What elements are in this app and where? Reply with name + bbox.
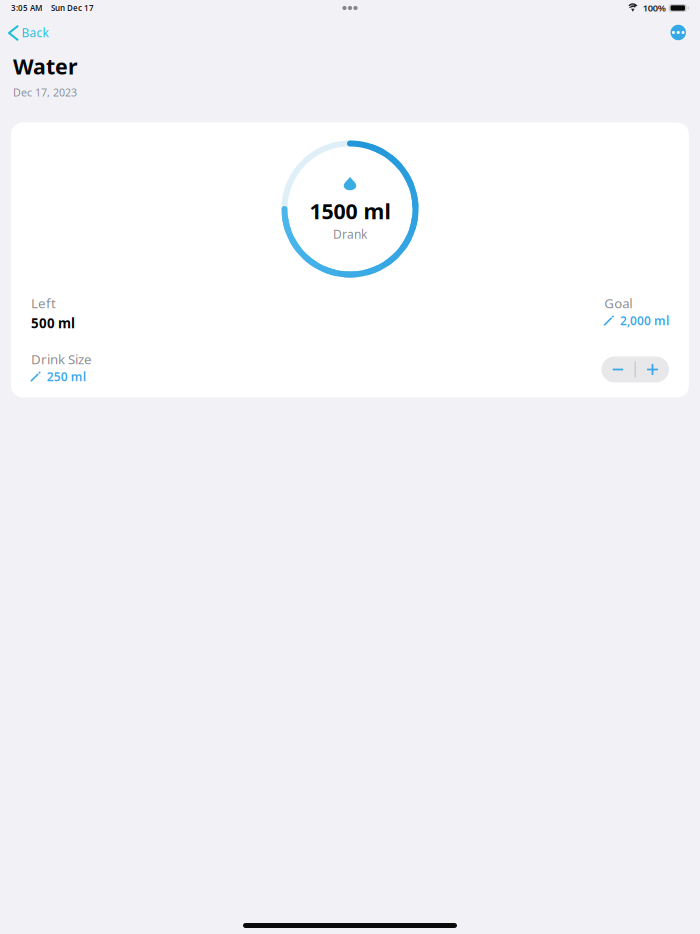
button[interactable]: Decrease [601,356,634,382]
staticText: 250 ml [47,368,86,384]
button[interactable]: 250 ml [31,373,86,385]
staticText: Dec 17, 2023 [13,85,77,99]
staticText: 1500 ml [309,197,390,225]
staticText: Goal [604,294,632,312]
staticText: Water [13,52,78,80]
staticText: 100% [643,2,666,14]
staticText: 500 ml [31,314,75,332]
staticText: 3:05 AM [11,3,42,13]
staticText: Sun Dec 17 [51,3,94,13]
button[interactable]: Increase [636,356,669,382]
button[interactable]: Back [2,14,57,45]
staticText: Drink Size [31,350,92,368]
button[interactable]: More [662,14,698,45]
staticText: Left [31,294,56,312]
button[interactable]: 2,000 ml [604,317,669,329]
staticText: 2,000 ml [620,312,669,328]
staticText: Drank [333,226,367,242]
staticText: Back [21,24,48,40]
